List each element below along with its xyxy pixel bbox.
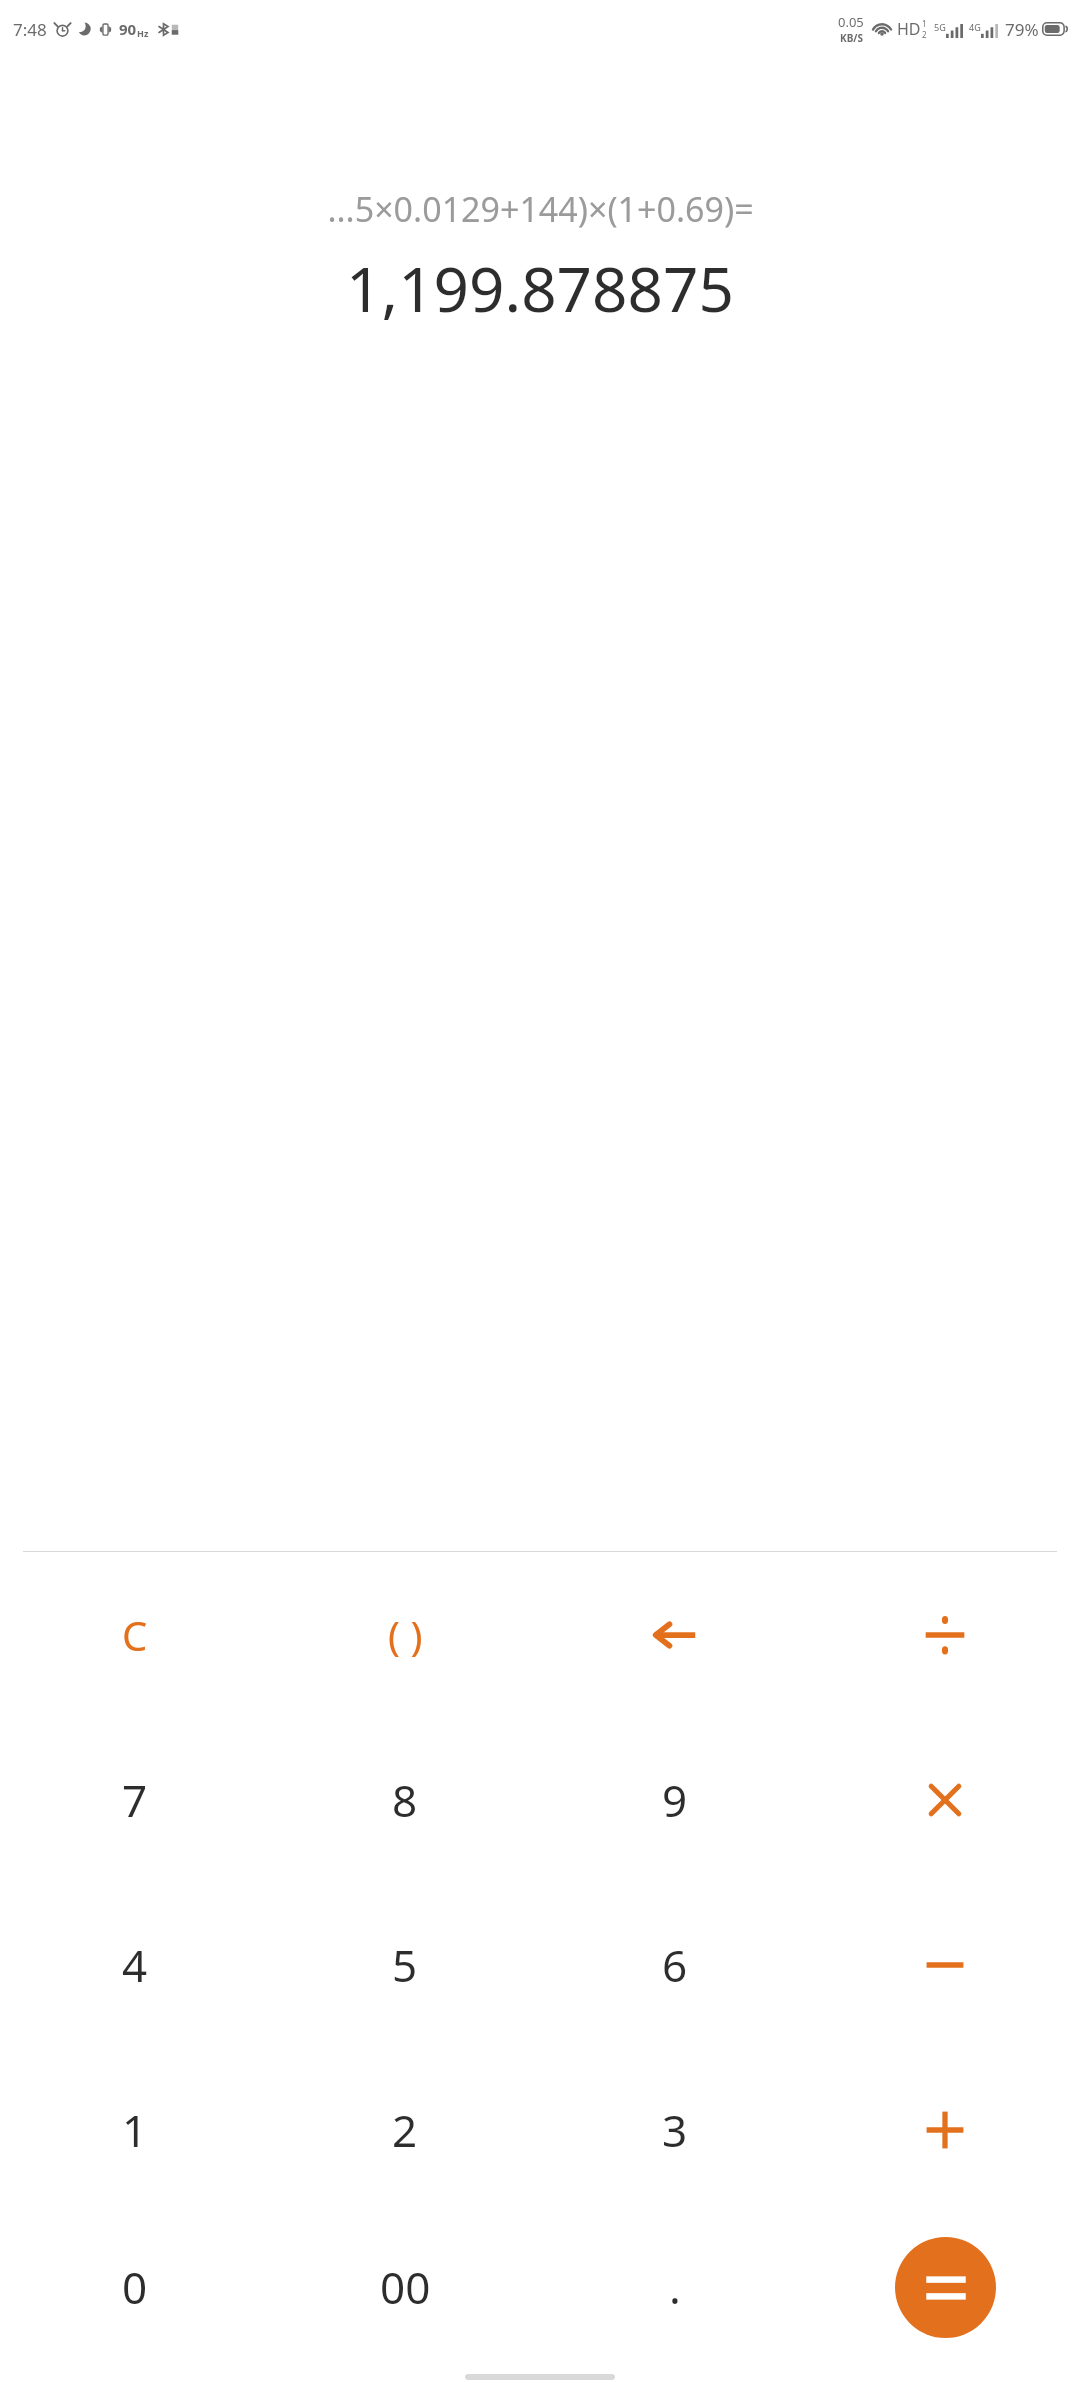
staticText: 8 <box>392 1770 418 1830</box>
button[interactable]: 9 <box>540 1717 810 1882</box>
button[interactable]: 5 <box>270 1882 540 2047</box>
staticText: 2 <box>392 2100 418 2160</box>
staticText: 1 <box>922 18 927 29</box>
button[interactable]: 7 <box>0 1717 270 1882</box>
staticText: C <box>122 1608 148 1662</box>
staticText: 5G <box>934 21 946 33</box>
button[interactable]: Minus <box>810 1882 1080 2047</box>
button[interactable]: Parentheses <box>270 1552 540 1717</box>
staticText: 79% <box>1005 18 1039 41</box>
staticText: 0.05 <box>838 13 864 31</box>
staticText: 9 <box>662 1770 688 1830</box>
staticText: 7:48 <box>13 18 47 41</box>
button[interactable]: 2 <box>270 2047 540 2212</box>
staticText: HD <box>897 18 921 40</box>
staticText: 1,199.878875 <box>346 246 734 330</box>
button[interactable]: 6 <box>540 1882 810 2047</box>
staticText: 1 <box>122 2100 148 2160</box>
staticText: 90 <box>119 19 137 39</box>
button[interactable]: Backspace <box>540 1552 810 1717</box>
button[interactable]: Divide <box>810 1552 1080 1717</box>
button[interactable]: 0 <box>0 2212 270 2362</box>
button[interactable]: Plus <box>810 2047 1080 2212</box>
button[interactable]: C <box>0 1552 270 1717</box>
button[interactable]: 00 <box>270 2212 540 2362</box>
button[interactable]: 4 <box>0 1882 270 2047</box>
staticText: ...5×0.0129+144)×(1+0.69)= <box>327 186 754 232</box>
staticText: 4G <box>969 21 981 33</box>
button[interactable]: . <box>540 2212 810 2362</box>
staticText: 00 <box>380 2257 431 2317</box>
staticText: 6 <box>662 1935 688 1995</box>
staticText: . <box>669 2257 681 2317</box>
button[interactable]: 8 <box>270 1717 540 1882</box>
staticText: 2 <box>922 29 927 40</box>
staticText: 3 <box>662 2100 688 2160</box>
button[interactable]: Equals <box>895 2237 996 2338</box>
staticText: KB/S <box>840 31 863 45</box>
button[interactable]: Multiply <box>810 1717 1080 1882</box>
staticText: 5 <box>392 1935 418 1995</box>
staticText: 7 <box>122 1770 148 1830</box>
staticText: 4 <box>122 1935 148 1995</box>
staticText: ( ) <box>388 1608 423 1662</box>
staticText: 0 <box>122 2257 148 2317</box>
staticText: Hz <box>137 27 149 39</box>
button[interactable]: 1 <box>0 2047 270 2212</box>
button[interactable]: 3 <box>540 2047 810 2212</box>
